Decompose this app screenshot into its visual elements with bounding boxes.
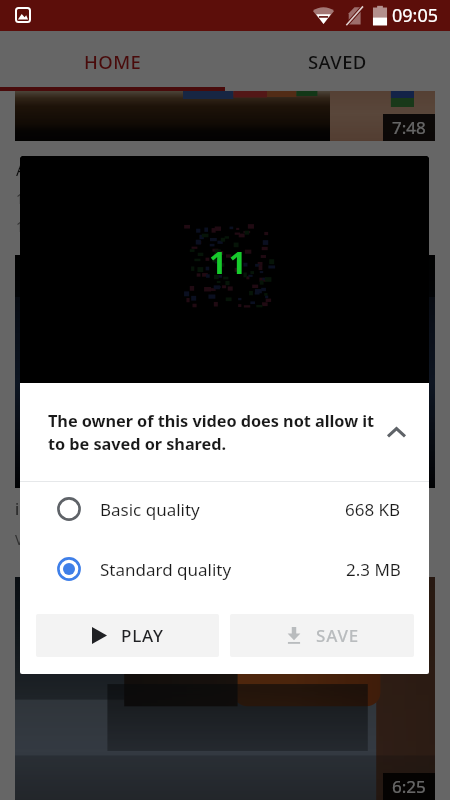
staticText: 2.3 MB bbox=[346, 558, 401, 581]
staticText: HOME bbox=[84, 49, 142, 74]
staticText: The owner of this video does not allow i… bbox=[48, 410, 378, 454]
button[interactable]: The owner of this video does not allow i… bbox=[20, 383, 429, 481]
staticText: 1 day ago bbox=[16, 217, 80, 236]
button[interactable]: SAVED bbox=[225, 31, 450, 91]
staticText: 668 KB bbox=[345, 498, 401, 521]
staticText: SAVED bbox=[308, 49, 367, 74]
staticText: 7:48 bbox=[392, 116, 426, 139]
staticText: 11 bbox=[209, 241, 249, 283]
staticText: Views \ 3 weeks bbox=[15, 530, 125, 549]
button[interactable]: PLAY bbox=[36, 614, 219, 657]
button[interactable]: Basic quality bbox=[20, 482, 429, 536]
staticText: Standard quality bbox=[100, 558, 232, 581]
staticText: 6:25 bbox=[392, 775, 426, 798]
staticText: in the night drive bbox=[15, 498, 144, 520]
staticText: 1.2M views bbox=[16, 189, 89, 208]
staticText: Basic quality bbox=[100, 498, 200, 521]
button[interactable]: Collapse bbox=[378, 412, 415, 452]
staticText: SAVE bbox=[316, 624, 359, 647]
button[interactable]: Standard quality bbox=[20, 539, 429, 599]
staticText: PLAY bbox=[121, 624, 164, 647]
button[interactable]: HOME bbox=[0, 31, 225, 91]
staticText: 09:05 bbox=[392, 3, 439, 28]
button[interactable]: SAVE bbox=[230, 614, 414, 657]
staticText: Amazing clip of the street bbox=[16, 159, 208, 181]
